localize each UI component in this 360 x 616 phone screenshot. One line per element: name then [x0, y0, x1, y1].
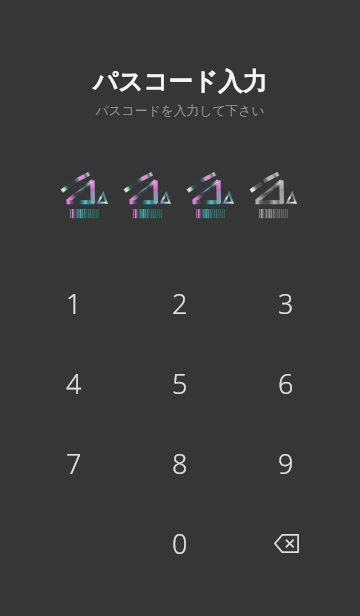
button[interactable]: 9 [233, 423, 339, 503]
button[interactable]: 5 [127, 343, 233, 423]
button[interactable]: 0 [127, 503, 233, 583]
button[interactable]: 4 [21, 343, 127, 423]
staticText: 6 [278, 365, 294, 402]
button[interactable]: 7 [21, 423, 127, 503]
staticText: 9 [278, 445, 294, 482]
staticText: パスコードを入力して下さい [0, 103, 360, 119]
button[interactable]: 6 [233, 343, 339, 423]
staticText: 0 [172, 525, 188, 562]
button[interactable]: 2 [127, 263, 233, 343]
button[interactable]: 3 [233, 263, 339, 343]
staticText: 7 [66, 445, 82, 482]
staticText: 8 [172, 445, 188, 482]
button[interactable]: 8 [127, 423, 233, 503]
staticText: 3 [278, 285, 294, 322]
staticText: 2 [172, 285, 188, 322]
staticText: 1 [66, 285, 82, 322]
staticText: 4 [66, 365, 82, 402]
button[interactable]: Delete [233, 503, 339, 583]
staticText: パスコード入力 [0, 66, 360, 97]
other: Passcode: 3 of 4 digits entered [0, 171, 359, 219]
staticText: 5 [172, 365, 188, 402]
button[interactable]: 1 [21, 263, 127, 343]
